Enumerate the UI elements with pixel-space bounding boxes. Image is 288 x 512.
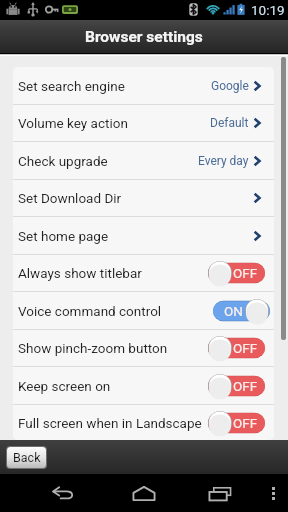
button[interactable]: Volume key action (13, 105, 274, 142)
staticText: Google (211, 79, 249, 93)
button[interactable]: More options (258, 474, 288, 512)
staticText: ON (224, 303, 243, 319)
staticText: Volume key action (18, 115, 128, 131)
staticText: Every day (198, 154, 249, 168)
button[interactable]: Recent apps (200, 474, 240, 512)
button[interactable]: Home (124, 474, 164, 512)
staticText: OFF (233, 265, 258, 281)
staticText: 10:19 (251, 2, 285, 18)
button[interactable]: Back (7, 447, 46, 468)
button[interactable]: Back (44, 474, 84, 512)
staticText: Default (210, 116, 249, 130)
staticText: Set search engine (18, 78, 125, 94)
staticText: Always show titlebar (18, 265, 142, 281)
button[interactable]: OFF (208, 411, 269, 435)
staticText: OFF (233, 415, 258, 431)
staticText: Set home page (18, 228, 109, 244)
staticText: Full screen when in Landscape (18, 415, 202, 431)
button[interactable]: ON (208, 299, 269, 323)
button[interactable]: Set Download Dir (13, 180, 274, 217)
button[interactable]: Voice command control (13, 292, 274, 330)
button[interactable]: Set search engine (13, 67, 274, 105)
staticText: OFF (233, 340, 258, 356)
button[interactable]: Set home page (13, 217, 274, 255)
button[interactable]: Show pinch-zoom button (13, 330, 274, 367)
button[interactable]: Always show titlebar (13, 255, 274, 292)
staticText: Back (13, 450, 41, 465)
staticText: Voice command control (18, 303, 162, 319)
staticText: Show pinch-zoom button (18, 340, 168, 356)
button[interactable]: Check upgrade (13, 142, 274, 180)
staticText: Keep screen on (18, 378, 111, 394)
staticText: Set Download Dir (18, 190, 122, 206)
button[interactable]: Full screen when in Landscape (13, 405, 274, 440)
staticText: OFF (233, 378, 258, 394)
button[interactable]: OFF (208, 336, 269, 360)
staticText: Browser settings (85, 28, 203, 46)
staticText: Check upgrade (18, 153, 108, 169)
button[interactable]: OFF (208, 374, 269, 398)
button[interactable]: OFF (208, 261, 269, 285)
button[interactable]: Keep screen on (13, 367, 274, 405)
